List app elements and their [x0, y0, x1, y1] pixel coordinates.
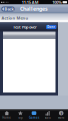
staticText: Top: [18, 116, 23, 119]
staticText: Challenges: [20, 5, 48, 12]
button[interactable]: Stats: [41, 109, 54, 120]
staticText: Back: [5, 6, 14, 12]
button[interactable]: Back: [1, 6, 15, 12]
button[interactable]: Games: [27, 109, 41, 120]
button[interactable]: Top: [14, 109, 27, 120]
staticText: Done: [47, 25, 55, 29]
staticText: More: [58, 116, 65, 119]
staticText: 11:15 AM: [22, 0, 39, 5]
staticText: Games: [29, 116, 39, 119]
staticText: Stats: [45, 116, 51, 119]
staticText: i: [61, 110, 62, 116]
button[interactable]: i: [54, 109, 68, 120]
staticText: Action Menu: [2, 15, 29, 21]
staticText: Test Popover: [13, 24, 37, 30]
button[interactable]: Home: [0, 109, 14, 120]
staticText: 100%: [52, 0, 62, 5]
staticText: Home: [2, 116, 11, 119]
button[interactable]: Done: [46, 25, 56, 29]
